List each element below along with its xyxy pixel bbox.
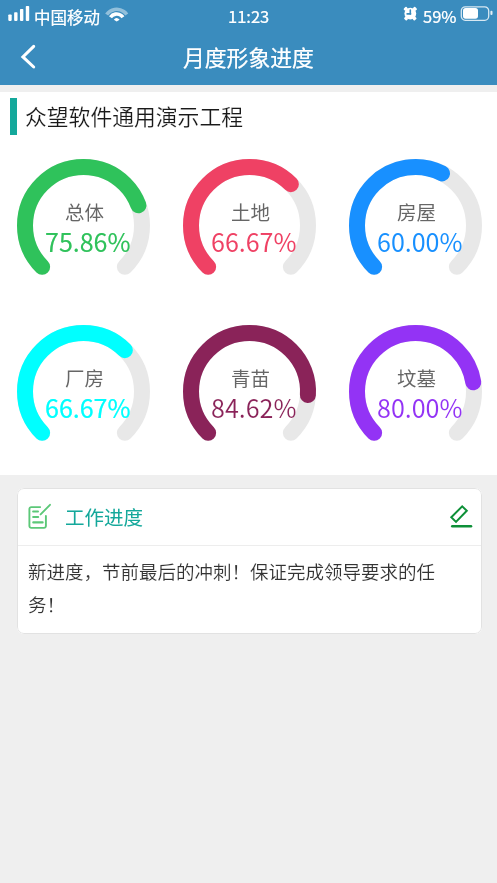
staticText: 房屋 [397,197,437,223]
staticText: 新进度，节前最后的冲刺！保证完成领导要求的任务！ [28,558,458,617]
staticText: 59% [423,4,457,28]
staticText: 75.86% [45,223,131,253]
staticText: 总体 [65,197,105,223]
staticText: 66.67% [45,389,131,419]
staticText: 月度形象进度 [183,41,314,73]
staticText: 土地 [231,197,271,223]
staticText: 厂房 [65,363,105,389]
staticText: 84.62% [211,389,297,419]
staticText: 80.00% [377,389,463,419]
staticText: 工作进度 [65,502,144,530]
staticText: 11:23 [228,4,270,28]
staticText: 坟墓 [397,363,437,389]
button[interactable]: Edit [442,496,482,536]
staticText: 中国移动 [34,5,100,29]
staticText: 众望软件通用演示工程 [25,100,243,132]
button[interactable]: Back [8,36,52,80]
staticText: 青苗 [231,363,271,389]
staticText: 60.00% [377,223,463,253]
staticText: 66.67% [211,223,297,253]
button[interactable]: 工作进度 [17,488,482,545]
